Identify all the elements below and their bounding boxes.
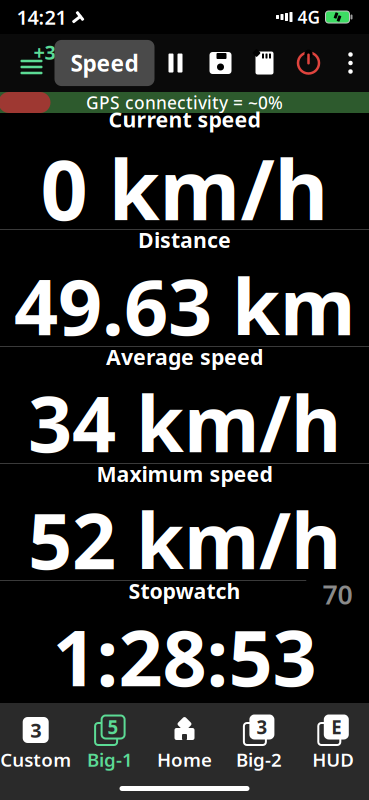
button[interactable]: E <box>296 709 369 778</box>
staticText: GPS connectivity = ~0% <box>86 91 283 114</box>
staticText: 3 <box>30 717 41 743</box>
button[interactable]: Storage <box>252 51 276 75</box>
staticText: Stopwatch <box>128 576 240 605</box>
staticText: Maximum speed <box>96 459 272 488</box>
staticText: 14:21 <box>16 4 66 30</box>
staticText: 3 <box>256 715 267 739</box>
staticText: 4G <box>297 5 320 28</box>
staticText: Current speed <box>108 105 260 133</box>
button[interactable]: 3 <box>0 709 73 778</box>
button[interactable]: Save <box>208 51 232 75</box>
staticText: Big-2 <box>236 747 282 772</box>
staticText: 0 km/h <box>40 133 328 243</box>
staticText: Home <box>157 747 212 772</box>
staticText: 34 km/h <box>28 371 341 473</box>
staticText: Custom <box>0 747 71 772</box>
button[interactable]: Speed <box>54 40 154 86</box>
staticText: 1:28:53 <box>52 605 316 707</box>
staticText: E <box>331 715 341 739</box>
button[interactable]: Menu <box>8 40 54 86</box>
staticText: 49.63 km <box>14 254 355 356</box>
staticText: 5 <box>108 715 119 739</box>
button[interactable]: More options <box>340 50 360 76</box>
button[interactable]: Power <box>296 51 320 75</box>
staticText: 70 <box>322 576 352 612</box>
button[interactable]: 5 <box>73 709 147 778</box>
staticText: 52 km/h <box>28 488 341 590</box>
button[interactable]: 3 <box>222 709 296 778</box>
staticText: Speed <box>70 48 138 78</box>
button[interactable]: Pause <box>162 50 188 76</box>
button[interactable]: Home <box>147 709 222 778</box>
staticText: Big-1 <box>87 747 133 772</box>
staticText: HUD <box>312 747 354 772</box>
staticText: +3 <box>33 39 55 65</box>
staticText: Average speed <box>106 342 263 371</box>
staticText: Distance <box>138 225 231 254</box>
